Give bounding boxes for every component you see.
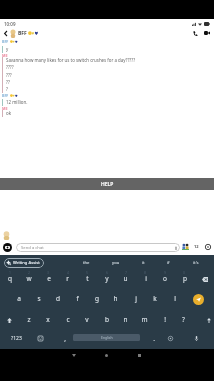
button[interactable]: a xyxy=(12,293,25,304)
staticText: ME xyxy=(2,106,8,111)
button[interactable]: r xyxy=(61,273,74,284)
button[interactable]: j xyxy=(129,293,142,304)
button[interactable]: Backspace xyxy=(198,274,211,285)
staticText: 8 xyxy=(144,270,146,275)
button[interactable]: e xyxy=(42,273,55,284)
button[interactable]: Video call xyxy=(201,27,213,39)
staticText: b xyxy=(105,315,109,324)
button[interactable]: it's xyxy=(183,257,209,268)
button[interactable]: Keyboard settings xyxy=(164,333,177,344)
button[interactable]: Recent apps xyxy=(132,349,146,362)
staticText: ??? xyxy=(6,72,12,78)
staticText: 10:09 xyxy=(4,21,16,27)
button[interactable]: the xyxy=(73,257,99,268)
button[interactable]: Back xyxy=(0,27,10,39)
button[interactable]: Timer xyxy=(193,243,200,250)
button[interactable]: f xyxy=(71,293,84,304)
staticText: 4 xyxy=(67,270,69,275)
button[interactable]: Writing Assist xyxy=(4,258,44,268)
staticText: 2 xyxy=(28,270,30,275)
button[interactable]: if xyxy=(155,257,181,268)
button[interactable]: n xyxy=(119,314,132,325)
button[interactable]: it xyxy=(130,257,156,268)
staticText: q xyxy=(8,274,12,283)
staticText: k xyxy=(153,294,157,303)
button[interactable]: Send a chat xyxy=(16,243,180,252)
staticText: ok xyxy=(6,110,12,116)
button[interactable]: Shift xyxy=(3,315,16,326)
button[interactable]: HELP xyxy=(0,178,214,190)
button[interactable]: ?123 xyxy=(6,333,26,344)
button[interactable]: Send xyxy=(193,294,204,305)
staticText: c xyxy=(66,315,70,324)
button[interactable]: x xyxy=(41,314,54,325)
button[interactable]: you xyxy=(103,257,129,268)
staticText: t xyxy=(86,274,89,283)
button[interactable]: Back xyxy=(67,349,81,362)
button[interactable]: English xyxy=(73,334,140,341)
staticText: if xyxy=(167,260,170,266)
button[interactable]: ? xyxy=(177,314,190,325)
staticText: ? xyxy=(182,315,185,324)
staticText: f xyxy=(76,294,79,303)
button[interactable]: y xyxy=(100,273,113,284)
staticText: . xyxy=(153,334,155,343)
button[interactable]: b xyxy=(100,314,113,325)
button[interactable]: ! xyxy=(158,314,171,325)
staticText: 12 xyxy=(194,244,199,249)
button[interactable]: k xyxy=(148,293,161,304)
staticText: r xyxy=(66,274,69,283)
staticText: the xyxy=(83,260,90,266)
button[interactable]: h xyxy=(109,293,122,304)
button[interactable]: Voice input xyxy=(190,333,203,344)
button[interactable]: o xyxy=(158,273,171,284)
button[interactable]: w xyxy=(22,273,35,284)
button[interactable]: l xyxy=(168,293,181,304)
button[interactable]: q xyxy=(3,273,16,284)
staticText: i xyxy=(145,274,147,283)
staticText: h xyxy=(113,294,118,303)
staticText: y xyxy=(6,46,9,52)
staticText: HELP xyxy=(101,181,114,188)
staticText: j xyxy=(135,294,137,303)
staticText: English xyxy=(101,335,113,340)
button[interactable]: Voice call xyxy=(189,27,201,39)
staticText: ME xyxy=(2,53,8,58)
button[interactable]: u xyxy=(119,273,132,284)
button[interactable]: s xyxy=(32,293,45,304)
staticText: z xyxy=(27,315,31,324)
staticText: 12 million. xyxy=(6,99,28,105)
staticText: p xyxy=(183,274,187,283)
button[interactable]: g xyxy=(90,293,103,304)
button[interactable]: , xyxy=(58,333,71,344)
staticText: l xyxy=(174,294,176,303)
button[interactable]: Enter xyxy=(203,315,214,326)
staticText: you xyxy=(112,260,120,266)
staticText: o xyxy=(163,274,167,283)
button[interactable]: More options xyxy=(204,243,211,250)
button[interactable]: i xyxy=(139,273,152,284)
staticText: it xyxy=(142,260,145,266)
button[interactable]: . xyxy=(147,333,160,344)
button[interactable]: p xyxy=(178,273,191,284)
staticText: m xyxy=(141,315,148,324)
staticText: Send a chat xyxy=(21,245,44,251)
button[interactable]: c xyxy=(61,314,74,325)
button[interactable]: Bitmoji stickers xyxy=(182,243,189,250)
staticText: BFF xyxy=(18,30,27,37)
button[interactable]: z xyxy=(22,314,35,325)
button[interactable]: Emoji xyxy=(34,333,47,344)
button[interactable]: v xyxy=(80,314,93,325)
staticText: BFF xyxy=(2,93,9,98)
button[interactable]: Home xyxy=(99,349,113,362)
staticText: 7 xyxy=(125,270,127,275)
button[interactable]: d xyxy=(51,293,64,304)
staticText: g xyxy=(95,294,99,303)
staticText: a xyxy=(17,294,21,303)
button[interactable]: m xyxy=(138,314,151,325)
button[interactable]: t xyxy=(81,273,94,284)
button[interactable]: Camera xyxy=(3,243,12,252)
staticText: d xyxy=(56,294,60,303)
staticText: v xyxy=(85,315,89,324)
staticText: 1 xyxy=(9,270,11,275)
